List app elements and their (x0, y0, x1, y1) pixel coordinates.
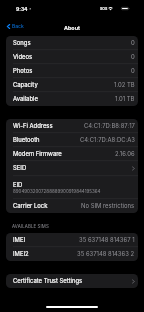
staticText: About (64, 25, 80, 32)
staticText: 0 (131, 39, 135, 46)
staticText: Songs (13, 39, 31, 46)
button[interactable]: EID (6, 176, 138, 199)
staticText: 1.02 TB (114, 81, 135, 88)
button[interactable]: Capacity (6, 78, 138, 92)
button[interactable]: Songs (6, 36, 138, 50)
staticText: Certificate Trust Settings (13, 277, 83, 284)
staticText: AVAILABLE SIMS (12, 224, 49, 229)
button[interactable]: Bluetooth (6, 133, 138, 147)
button[interactable]: Modem Firmware (6, 147, 138, 161)
staticText: IMEI (13, 236, 26, 243)
staticText: 2.16.06 (115, 150, 135, 157)
button[interactable]: SEID (6, 161, 138, 176)
button[interactable]: Videos (6, 50, 138, 64)
staticText: 35 637148 814363 2 (77, 250, 135, 257)
button[interactable]: Available (6, 92, 138, 106)
staticText: Photos (13, 67, 33, 74)
staticText: Wi-Fi Address (13, 122, 53, 129)
button[interactable]: Back (3, 21, 27, 31)
button[interactable]: Certificate Trust Settings (6, 274, 138, 288)
staticText: Back (12, 23, 24, 29)
staticText: 0 (131, 67, 135, 74)
staticText: No SIM restrictions (81, 202, 135, 209)
button[interactable]: IMEI (6, 233, 138, 247)
staticText: 1.01 TB (115, 95, 135, 102)
staticText: 35 637148 814367 1 (79, 236, 135, 243)
button[interactable]: Carrier Lock (6, 199, 138, 213)
staticText: 9:34 (16, 6, 28, 12)
staticText: SOS (100, 7, 108, 11)
other: Home indicator (46, 306, 98, 308)
staticText: Bluetooth (13, 136, 40, 143)
button[interactable]: IMEI2 (6, 247, 138, 261)
staticText: Videos (13, 53, 33, 60)
staticText: Capacity (13, 81, 38, 88)
staticText: EID (13, 181, 23, 188)
staticText: C4:C1:7D:A8:DC:A3 (80, 136, 135, 143)
button[interactable]: Photos (6, 64, 138, 78)
staticText: Available (13, 95, 38, 102)
staticText: IMEI2 (13, 250, 29, 257)
button[interactable]: Wi-Fi Address (6, 119, 138, 133)
staticText: Modem Firmware (13, 150, 62, 157)
staticText: 0 (131, 53, 135, 60)
staticText: SEID (13, 164, 27, 171)
staticText: 89049032007288889900919844195364 (13, 189, 101, 194)
staticText: Carrier Lock (13, 202, 48, 209)
staticText: C4:C1:7D:B8:87:17 (84, 122, 135, 129)
